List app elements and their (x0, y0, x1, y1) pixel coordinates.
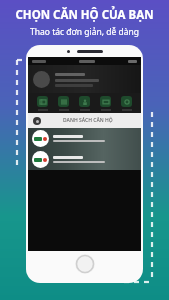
button[interactable] (28, 128, 141, 149)
other: Danh sách (33, 117, 41, 125)
button[interactable]: Chức năng 1 (36, 95, 49, 112)
button[interactable]: Chức năng 4 (99, 95, 112, 112)
other: Home (75, 254, 95, 274)
staticText: DANH SÁCH CĂN HỘ (63, 117, 113, 124)
staticText: CHỌN CĂN HỘ CỦA BẠN (15, 7, 154, 23)
button[interactable]: Danh sách (28, 113, 141, 128)
button[interactable]: Chức năng 3 (78, 95, 91, 112)
button[interactable] (28, 65, 141, 93)
button[interactable]: Chức năng 5 (120, 95, 133, 112)
button[interactable] (28, 149, 141, 170)
button[interactable]: Chức năng 2 (57, 95, 70, 112)
staticText: Thao tác đơn giản, dễ dàng (30, 26, 139, 38)
